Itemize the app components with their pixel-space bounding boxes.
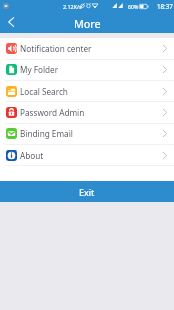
button[interactable]: Back (0, 12, 21, 33)
staticText: Binding Email (20, 128, 73, 139)
staticText: My Folder (20, 64, 59, 75)
staticText: About (20, 150, 44, 161)
staticText: 60% (128, 3, 139, 10)
button[interactable]: Local Search (0, 81, 174, 102)
button[interactable]: My Folder (0, 59, 174, 80)
staticText: Local Search (20, 86, 68, 97)
button[interactable]: Exit (0, 181, 174, 202)
staticText: 2.12K/s (63, 3, 82, 10)
staticText: Notification center (20, 43, 92, 54)
staticText: Exit (79, 186, 95, 198)
staticText: 18:37 (157, 2, 173, 10)
button[interactable]: Binding Email (0, 123, 174, 144)
button[interactable]: About (0, 145, 174, 166)
staticText: More (74, 16, 101, 31)
button[interactable]: Notification center (0, 38, 174, 59)
staticText: Password Admin (20, 107, 85, 118)
button[interactable]: Password Admin (0, 102, 174, 123)
